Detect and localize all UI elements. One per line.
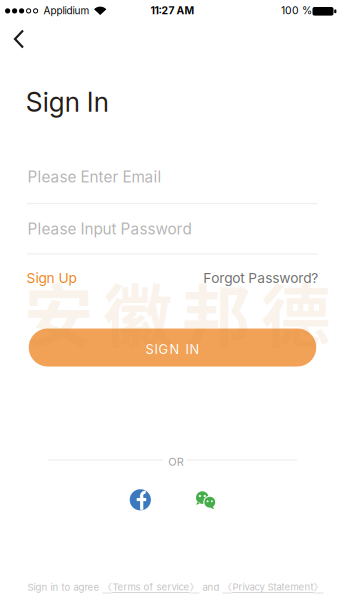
button[interactable]: 《Privacy Statement》 — [222, 581, 323, 593]
staticText: Please Input Password — [27, 220, 191, 238]
staticText: 100 % — [281, 4, 312, 17]
staticText: Sign Up — [26, 270, 76, 286]
button[interactable]: Sign Up — [26, 270, 76, 286]
staticText: 徽 — [103, 262, 172, 362]
staticText: 《Privacy Statement》 — [222, 581, 323, 593]
staticText: Sign In — [26, 86, 109, 118]
button[interactable]: Sign in with WeChat — [194, 489, 218, 511]
staticText: Applidium — [43, 5, 89, 17]
button[interactable]: Forgot Password? — [203, 270, 318, 286]
button[interactable]: Sign in with Facebook — [130, 489, 151, 510]
button[interactable]: 《Terms of service》 — [102, 581, 199, 593]
staticText: 德 — [261, 262, 330, 362]
staticText: 邦 — [182, 262, 251, 362]
staticText: Please Enter Email — [27, 168, 161, 186]
staticText: Forgot Password? — [203, 270, 318, 286]
staticText: SIGN IN — [145, 342, 199, 357]
staticText: and — [199, 582, 222, 593]
staticText: 11:27 AM — [150, 4, 194, 17]
button[interactable]: SIGN IN — [29, 328, 316, 366]
staticText: Sign in to agree — [27, 582, 102, 593]
staticText: 《Terms of service》 — [102, 581, 199, 593]
button[interactable]: Back — [4, 27, 34, 51]
staticText: OR — [168, 455, 184, 468]
staticText: 安 — [24, 262, 93, 362]
